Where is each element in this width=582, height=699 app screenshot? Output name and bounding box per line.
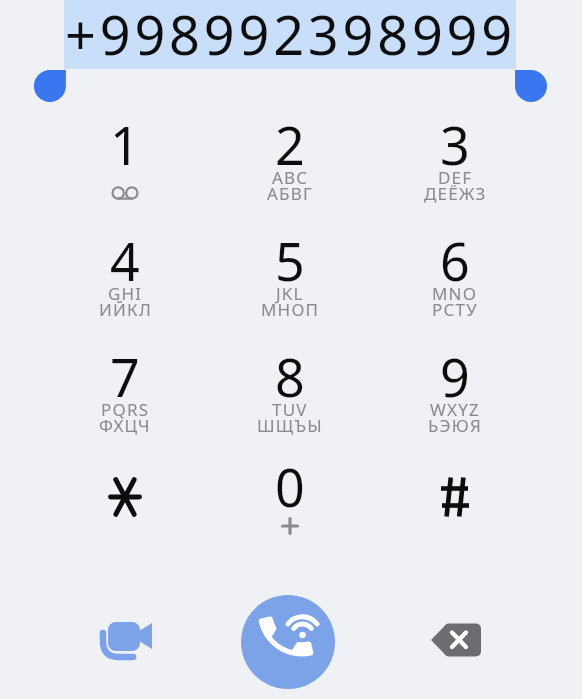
staticText: WXYZ <box>430 398 480 421</box>
staticText: PQRS <box>101 398 150 421</box>
button[interactable] <box>50 456 200 554</box>
staticText: MNO <box>432 282 478 305</box>
staticText: DEF <box>438 166 473 189</box>
button[interactable] <box>380 456 530 554</box>
staticText: 6 <box>440 225 470 296</box>
button[interactable] <box>215 228 365 326</box>
staticText: ДЕЁЖЗ <box>424 182 487 205</box>
staticText: ФХЦЧ <box>99 414 151 437</box>
button[interactable] <box>79 594 169 684</box>
staticText: 2 <box>275 109 305 180</box>
staticText: 9 <box>440 341 470 412</box>
staticText: 5 <box>275 225 305 296</box>
staticText: ABC <box>272 166 309 189</box>
staticText: +998992398999 <box>65 0 516 66</box>
button[interactable] <box>215 344 365 442</box>
staticText: 7 <box>110 341 140 412</box>
staticText: 3 <box>440 109 470 180</box>
staticText: ИЙКЛ <box>99 298 152 321</box>
staticText: МНОП <box>261 298 320 321</box>
staticText: АБВГ <box>267 182 313 205</box>
staticText: GHI <box>108 282 143 305</box>
staticText: ЬЭЮЯ <box>428 414 482 437</box>
button[interactable] <box>50 112 200 210</box>
button[interactable] <box>50 228 200 326</box>
staticText: 0 <box>275 451 305 522</box>
button[interactable] <box>411 605 501 675</box>
staticText: ШЩЪЫ <box>257 414 323 437</box>
button[interactable] <box>241 595 335 689</box>
staticText: 1 <box>110 109 140 180</box>
button[interactable] <box>215 456 365 554</box>
button[interactable]: +998992398999 <box>64 0 516 69</box>
button[interactable] <box>215 112 365 210</box>
button[interactable] <box>380 344 530 442</box>
button[interactable] <box>50 344 200 442</box>
staticText: РСТУ <box>432 298 478 321</box>
button[interactable] <box>380 228 530 326</box>
staticText: 8 <box>275 341 305 412</box>
button[interactable] <box>380 112 530 210</box>
staticText: 4 <box>110 225 140 296</box>
staticText: JKL <box>276 282 304 305</box>
staticText: TUV <box>272 398 308 421</box>
